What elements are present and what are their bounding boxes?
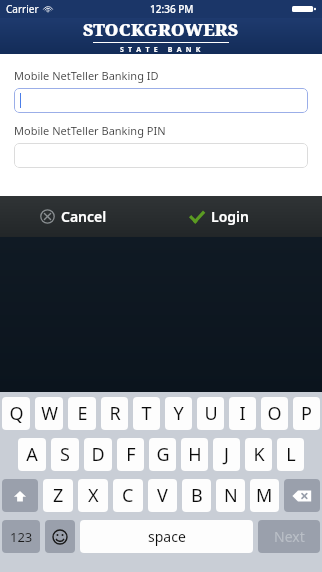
button[interactable]: K: [245, 438, 272, 471]
staticText: O: [267, 401, 282, 426]
staticText: Y: [173, 401, 184, 426]
staticText: V: [157, 483, 168, 508]
staticText: A: [26, 442, 38, 467]
button[interactable]: Z: [43, 479, 73, 512]
staticText: STOCKGROWERS: [83, 18, 239, 41]
button[interactable]: Q: [2, 397, 30, 430]
button[interactable]: J: [213, 438, 240, 471]
staticText: S: [60, 442, 70, 467]
button[interactable]: M: [250, 479, 279, 512]
staticText: Z: [53, 483, 64, 508]
staticText: Mobile NetTeller Banking PIN: [14, 123, 166, 138]
staticText: C: [122, 483, 134, 508]
button[interactable]: U: [197, 397, 224, 430]
button[interactable]: G: [149, 438, 176, 471]
button[interactable]: R: [101, 397, 128, 430]
staticText: Carrier: [6, 2, 39, 16]
button[interactable]: Shift: [2, 479, 38, 512]
button[interactable]: P: [293, 397, 320, 430]
staticText: I: [239, 401, 246, 426]
button[interactable]: Next: [258, 520, 320, 553]
button[interactable]: T: [133, 397, 160, 430]
button[interactable]: X: [78, 479, 108, 512]
staticText: Login: [211, 207, 249, 226]
button[interactable]: Emoji: [45, 520, 75, 553]
staticText: 123: [10, 528, 33, 546]
staticText: G: [156, 442, 170, 467]
staticText: F: [126, 442, 136, 467]
button[interactable]: E: [68, 397, 96, 430]
button[interactable]: A: [18, 438, 46, 471]
button[interactable]: N: [216, 479, 245, 512]
button[interactable]: [14, 88, 308, 113]
staticText: P: [301, 401, 312, 426]
staticText: D: [91, 442, 105, 467]
staticText: S T A T E B A N K: [120, 45, 202, 54]
staticText: H: [188, 442, 202, 467]
staticText: Cancel: [61, 207, 107, 226]
button[interactable]: W: [35, 397, 63, 430]
button[interactable]: V: [148, 479, 177, 512]
button[interactable]: Backspace: [284, 479, 320, 512]
staticText: B: [191, 483, 203, 508]
staticText: Mobile NetTeller Banking ID: [14, 68, 159, 83]
staticText: 12:36 PM: [150, 2, 194, 16]
button[interactable]: D: [84, 438, 112, 471]
button[interactable]: Y: [165, 397, 192, 430]
button[interactable]: B: [182, 479, 211, 512]
button[interactable]: Login: [161, 196, 322, 237]
staticText: N: [224, 483, 238, 508]
staticText: L: [286, 442, 296, 467]
staticText: T: [141, 401, 152, 426]
staticText: space: [148, 527, 186, 546]
staticText: R: [109, 401, 121, 426]
staticText: K: [253, 442, 265, 467]
button[interactable]: Cancel: [0, 196, 161, 237]
staticText: W: [41, 401, 58, 426]
staticText: X: [88, 483, 99, 508]
button[interactable]: L: [277, 438, 304, 471]
staticText: U: [204, 401, 218, 426]
staticText: M: [256, 483, 273, 508]
button[interactable]: [14, 143, 308, 168]
button[interactable]: space: [80, 520, 253, 553]
button[interactable]: H: [181, 438, 208, 471]
staticText: Q: [9, 401, 24, 426]
button[interactable]: I: [229, 397, 256, 430]
button[interactable]: C: [113, 479, 143, 512]
button[interactable]: S: [51, 438, 79, 471]
staticText: Next: [274, 527, 305, 546]
staticText: J: [224, 442, 229, 467]
button[interactable]: F: [117, 438, 144, 471]
staticText: E: [77, 401, 88, 426]
button[interactable]: 123: [2, 520, 40, 553]
button[interactable]: O: [261, 397, 288, 430]
